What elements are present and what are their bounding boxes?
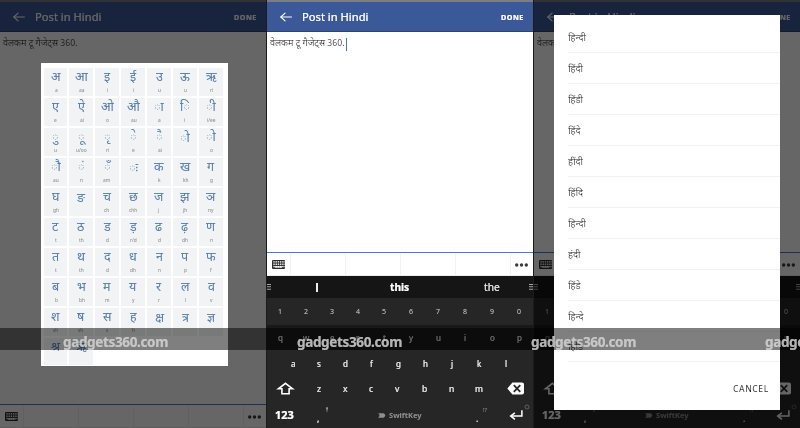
button[interactable]: म xyxy=(95,278,119,306)
button[interactable]: ज्ञ xyxy=(199,308,223,336)
button[interactable]: m xyxy=(465,376,492,401)
button[interactable]: फ xyxy=(199,248,223,276)
button[interactable]: ण xyxy=(199,218,223,246)
button[interactable]: ◌ी xyxy=(199,98,223,126)
button[interactable]: DONE xyxy=(225,2,266,32)
button[interactable]: Keyboard menu xyxy=(534,276,538,298)
button[interactable]: More options xyxy=(510,253,533,276)
button[interactable]: च xyxy=(95,188,119,216)
button[interactable]: . xyxy=(458,401,494,428)
button[interactable]: p xyxy=(506,325,533,350)
button[interactable]: v xyxy=(384,376,411,401)
button[interactable]: Keyboard xyxy=(0,405,23,428)
button[interactable]: 1 xyxy=(534,298,560,325)
button[interactable]: ध xyxy=(121,248,145,276)
button[interactable]: ऋ xyxy=(199,68,223,96)
button[interactable]: ढ xyxy=(147,218,171,246)
button[interactable]: घ xyxy=(44,188,67,216)
button[interactable]: f xyxy=(358,350,385,376)
button[interactable]: w xyxy=(293,325,319,350)
button[interactable]: ◌ा xyxy=(147,98,171,126)
button[interactable]: d xyxy=(332,350,358,376)
button[interactable]: u xyxy=(692,325,719,350)
button[interactable]: हंदी xyxy=(554,239,780,270)
button[interactable]: 2 xyxy=(560,298,586,325)
button[interactable]: ट xyxy=(44,218,67,246)
button[interactable]: ◌ः xyxy=(121,158,145,186)
button[interactable]: 5 xyxy=(371,298,398,325)
button[interactable]: ठ xyxy=(69,218,93,246)
button[interactable]: क xyxy=(147,158,171,186)
button[interactable]: ष xyxy=(69,308,93,336)
button[interactable]: ग xyxy=(199,158,223,186)
button[interactable]: q xyxy=(267,325,293,350)
button[interactable]: अ xyxy=(44,68,67,96)
button[interactable]: More options xyxy=(777,253,800,276)
button[interactable]: 7 xyxy=(425,298,452,325)
button[interactable] xyxy=(271,276,356,298)
button[interactable]: हिंदी xyxy=(554,53,780,84)
button[interactable]: More options xyxy=(243,405,266,428)
button[interactable]: Enter xyxy=(494,401,533,428)
button[interactable]: l xyxy=(760,350,787,376)
button[interactable]: ◌ं xyxy=(69,158,93,186)
button[interactable]: Shift xyxy=(267,376,306,401)
button[interactable]: झ xyxy=(173,188,197,216)
button[interactable]: ओ xyxy=(95,98,119,126)
button[interactable]: भ xyxy=(69,278,93,306)
button[interactable]: , xyxy=(573,401,609,428)
button[interactable]: ◌ै xyxy=(147,128,171,156)
button[interactable]: क्ष xyxy=(147,308,171,336)
button[interactable]: s xyxy=(306,350,332,376)
button[interactable]: ढ़ xyxy=(173,218,197,246)
button[interactable]: r xyxy=(612,325,638,350)
button[interactable]: ◌ो xyxy=(199,128,223,156)
button[interactable]: ज xyxy=(147,188,171,216)
button[interactable]: b xyxy=(411,376,438,401)
button[interactable]: आ xyxy=(69,68,93,96)
button[interactable]: Shift xyxy=(534,376,573,401)
button[interactable]: q xyxy=(534,325,560,350)
button[interactable]: न xyxy=(147,248,171,276)
button[interactable]: Backspace xyxy=(492,376,533,401)
button[interactable]: ड़ xyxy=(121,218,145,246)
button[interactable]: w xyxy=(560,325,586,350)
button[interactable]: l xyxy=(493,350,520,376)
button[interactable]: त xyxy=(44,248,67,276)
button[interactable]: छ xyxy=(121,188,145,216)
button[interactable]: Back xyxy=(267,2,299,32)
button[interactable]: र xyxy=(147,278,171,306)
button[interactable]: Keyboard xyxy=(267,253,290,276)
button[interactable]: श्र xyxy=(44,338,67,365)
button[interactable]: Backspace xyxy=(759,376,800,401)
button[interactable]: 0 xyxy=(506,298,533,325)
button[interactable]: 123 xyxy=(267,401,306,428)
button[interactable]: a xyxy=(547,350,573,376)
button[interactable]: 1 xyxy=(267,298,293,325)
button[interactable]: ए xyxy=(44,98,67,126)
button[interactable]: हींदी xyxy=(554,146,780,177)
button[interactable] xyxy=(538,276,623,298)
button[interactable]: स xyxy=(95,308,119,336)
button[interactable]: 123 xyxy=(534,401,573,428)
button[interactable]: ◌ू xyxy=(69,128,93,156)
button[interactable]: i xyxy=(452,325,479,350)
button[interactable]: s xyxy=(573,350,599,376)
button[interactable]: . xyxy=(725,401,761,428)
button[interactable]: SwiftKey xyxy=(342,401,458,428)
button[interactable]: ◌ो xyxy=(173,128,197,156)
button[interactable]: ◌ु xyxy=(44,128,67,156)
button[interactable]: श xyxy=(44,308,67,336)
button[interactable]: r xyxy=(345,325,371,350)
button[interactable]: y xyxy=(398,325,425,350)
